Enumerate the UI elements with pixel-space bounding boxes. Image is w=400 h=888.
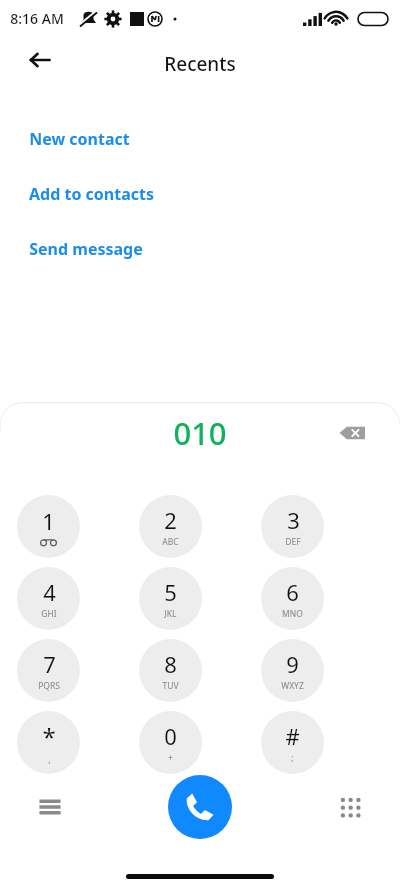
staticText: + [168, 752, 173, 764]
button[interactable]: Call [168, 775, 232, 839]
button[interactable]: Backspace [332, 413, 372, 453]
staticText: Recents [164, 51, 236, 77]
button[interactable]: * [17, 711, 80, 774]
staticText: TUV [162, 680, 179, 692]
staticText: * [42, 720, 56, 753]
staticText: 1 [42, 506, 55, 536]
staticText: , [48, 754, 51, 766]
staticText: New contact [29, 128, 130, 150]
staticText: Add to contacts [29, 183, 154, 205]
staticText: ABC [162, 536, 179, 548]
button[interactable]: New contact [0, 111, 400, 166]
staticText: 4 [43, 577, 56, 607]
staticText: Send message [29, 238, 143, 260]
button[interactable]: 2 [139, 495, 202, 558]
staticText: 7 [43, 649, 56, 679]
staticText: 010 [173, 412, 227, 454]
button[interactable]: 4 [17, 567, 80, 630]
staticText: 9 [286, 649, 299, 679]
button[interactable]: Send message [0, 221, 400, 276]
staticText: 2 [164, 505, 177, 535]
button[interactable]: # [261, 711, 324, 774]
button[interactable]: 8 [139, 639, 202, 702]
button[interactable]: Call log [26, 783, 74, 831]
button[interactable]: 1 [17, 495, 80, 558]
staticText: 8 [164, 649, 177, 679]
button[interactable]: Back [18, 38, 62, 82]
button[interactable]: 0 [139, 711, 202, 774]
staticText: 0 [164, 721, 177, 751]
staticText: # [285, 721, 300, 751]
staticText: 6 [286, 577, 299, 607]
staticText: 8:16 AM [10, 9, 64, 28]
button[interactable]: 5 [139, 567, 202, 630]
staticText: ; [291, 752, 294, 764]
button[interactable]: 9 [261, 639, 324, 702]
staticText: 5 [164, 577, 177, 607]
button[interactable]: 6 [261, 567, 324, 630]
staticText: 3 [287, 505, 300, 535]
button[interactable]: Add to contacts [0, 166, 400, 221]
button[interactable]: Dialpad [326, 783, 374, 831]
staticText: JKL [164, 608, 177, 620]
staticText: GHI [41, 608, 57, 620]
button[interactable]: 3 [261, 495, 324, 558]
staticText: WXYZ [281, 680, 304, 692]
button[interactable]: 7 [17, 639, 80, 702]
staticText: MNO [282, 608, 303, 620]
staticText: PQRS [38, 680, 60, 692]
staticText: DEF [285, 536, 301, 548]
